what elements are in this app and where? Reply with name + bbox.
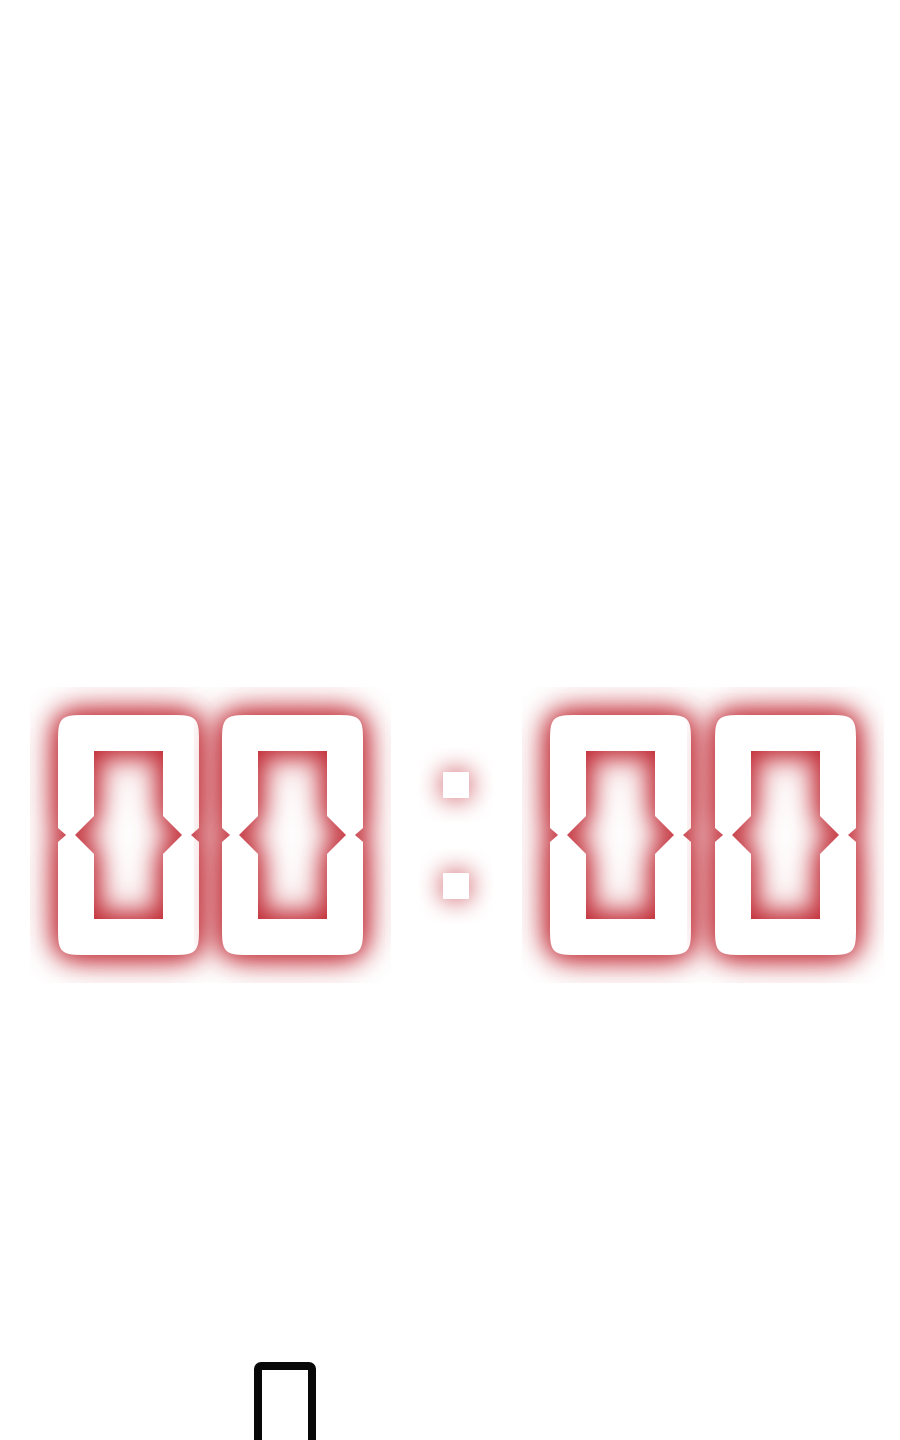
button[interactable]: 00:00 [0,0,900,1440]
